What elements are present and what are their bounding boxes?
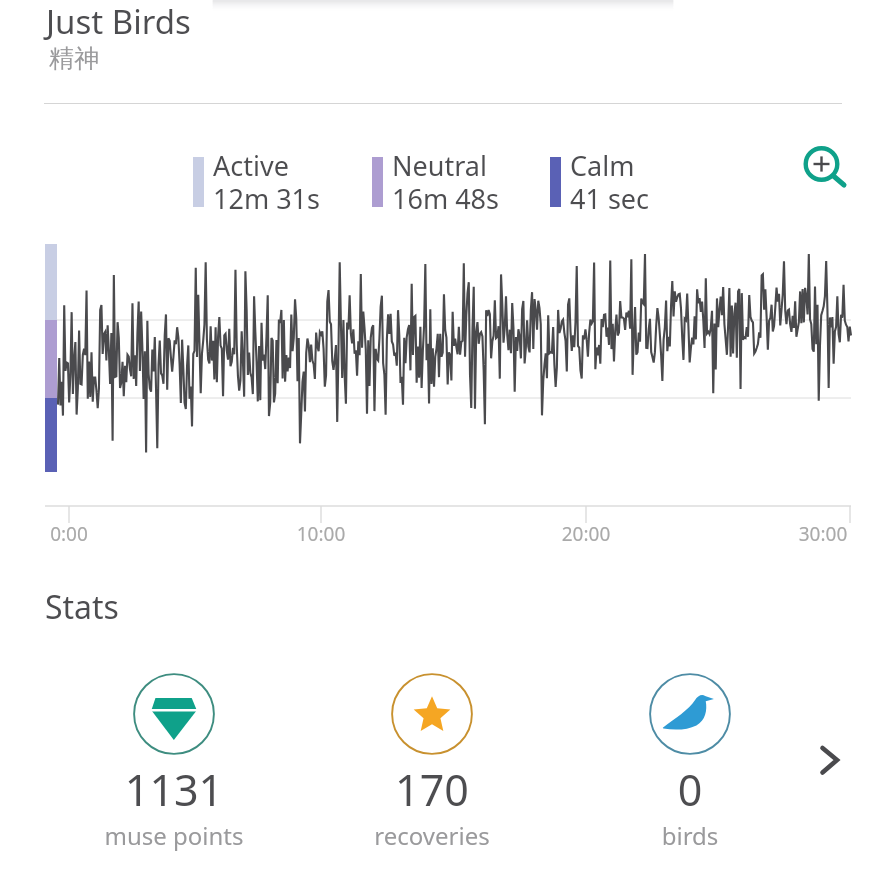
button[interactable]: 170	[346, 673, 518, 852]
staticText: Calm	[570, 147, 635, 184]
staticText: Active	[213, 147, 289, 184]
staticText: 12m 31s	[213, 180, 320, 217]
button[interactable]: Neutral	[372, 147, 537, 217]
button[interactable]: Active	[193, 147, 358, 217]
staticText: recoveries	[346, 819, 518, 852]
staticText: 0:00	[9, 521, 129, 547]
staticText: 1131	[88, 760, 260, 819]
button[interactable]: Zoom in	[785, 128, 857, 200]
staticText: Just Birds	[46, 0, 191, 44]
staticText: 0	[604, 760, 776, 819]
button[interactable]: More stats	[796, 722, 864, 790]
staticText: Stats	[45, 585, 119, 629]
staticText: 30:00	[763, 521, 883, 547]
staticText: 16m 48s	[392, 180, 499, 217]
staticText: 41 sec	[570, 180, 650, 217]
staticText: Neutral	[392, 147, 487, 184]
button[interactable]: Calm	[550, 147, 715, 217]
button[interactable]: 0	[604, 673, 776, 852]
staticText: 10:00	[261, 521, 381, 547]
staticText: 精神	[49, 43, 99, 74]
staticText: 20:00	[526, 521, 646, 547]
staticText: muse points	[88, 819, 260, 852]
staticText: birds	[604, 819, 776, 852]
button[interactable]: 1131	[88, 673, 260, 852]
staticText: 170	[346, 760, 518, 819]
